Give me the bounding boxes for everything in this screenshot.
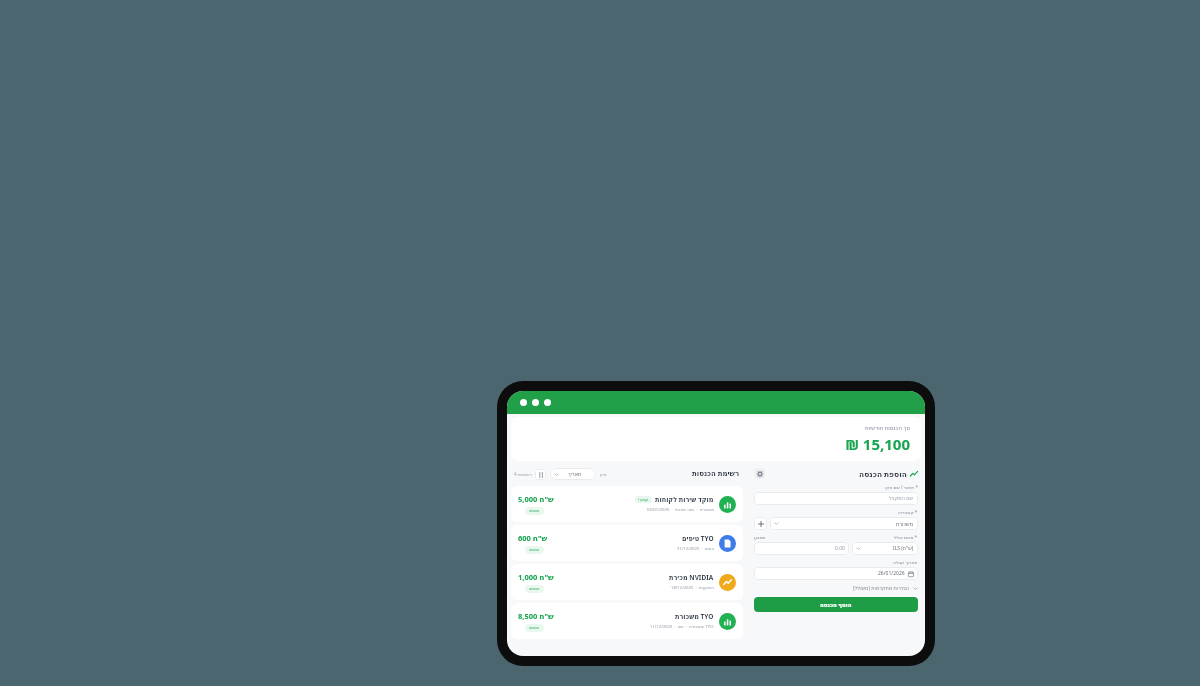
button[interactable]: 600 ש"ח: [511, 525, 743, 561]
staticText: ₪ 15,100: [845, 434, 910, 454]
staticText: הגדרות מתקדמות (משולל): [853, 585, 910, 592]
button[interactable]: 5,000 ש"ח: [511, 486, 743, 522]
staticText: 11/12/2025 · משכורת · שמ: TYO: [650, 624, 714, 630]
staticText: תיאור / שם פקו *: [885, 484, 918, 490]
button[interactable]: 0.00: [754, 542, 849, 555]
staticText: סכום כולל *: [894, 534, 918, 540]
staticText: תאריך: [568, 471, 582, 477]
staticText: 05/01/2026 · משכורת · שמ: ישראל: [647, 507, 714, 513]
staticText: רשימת הכנסות: [692, 469, 740, 479]
staticText: 31/12/2025 · בונוס: [677, 546, 714, 552]
staticText: הכנסה: [529, 626, 540, 630]
staticText: מיון: [600, 472, 607, 477]
button[interactable]: Sort direction: [535, 469, 546, 480]
staticText: 26/01/2026: [878, 570, 905, 577]
staticText: שם המקבל: [889, 495, 914, 502]
button[interactable]: משכורת: [770, 517, 918, 530]
staticText: ILS (ש"ח): [893, 545, 914, 552]
staticText: • קבוע: [638, 497, 649, 502]
button[interactable]: תאריך: [550, 468, 596, 480]
staticText: 8,500 ש"ח: [518, 611, 554, 621]
staticText: הוספת הכנסה: [859, 469, 907, 479]
staticText: הוסף הכנסה: [820, 601, 852, 608]
button[interactable]: Add category: [754, 517, 767, 530]
button[interactable]: Settings: [754, 468, 765, 479]
button[interactable]: 26/01/2026: [754, 567, 918, 580]
staticText: 1,000 ש"ח: [518, 572, 554, 582]
button[interactable]: שם המקבל: [754, 492, 918, 505]
staticText: 600 ש"ח: [518, 533, 548, 543]
staticText: הכנסה: [529, 548, 540, 552]
staticText: תאריך קבלה: [893, 559, 918, 565]
staticText: משכורת: [896, 521, 914, 527]
staticText: 18/12/2025 · השקעות: [671, 585, 714, 591]
button[interactable]: 8,500 ש"ח: [511, 603, 743, 639]
button[interactable]: הגדרות מתקדמות (משולל): [754, 585, 918, 592]
button[interactable]: הוסף הכנסה: [754, 597, 918, 612]
staticText: מטבע: [754, 535, 766, 540]
staticText: הכנסה: [529, 587, 540, 591]
staticText: 4 רשומות: [514, 471, 532, 477]
staticText: מוקד שירות לקוחות: [655, 495, 714, 504]
staticText: מכירת NVIDIA: [669, 573, 714, 582]
staticText: משכורת TYO: [675, 612, 714, 621]
staticText: הכנסה: [529, 509, 540, 513]
staticText: קטגוריה *: [898, 509, 918, 515]
button[interactable]: 1,000 ש"ח: [511, 564, 743, 600]
button[interactable]: ILS (ש"ח): [852, 542, 918, 555]
staticText: סך הכנסות חודשיות: [864, 424, 910, 431]
staticText: טיפים TYO: [682, 534, 714, 543]
staticText: 0.00: [835, 545, 845, 552]
staticText: 5,000 ש"ח: [518, 494, 554, 504]
